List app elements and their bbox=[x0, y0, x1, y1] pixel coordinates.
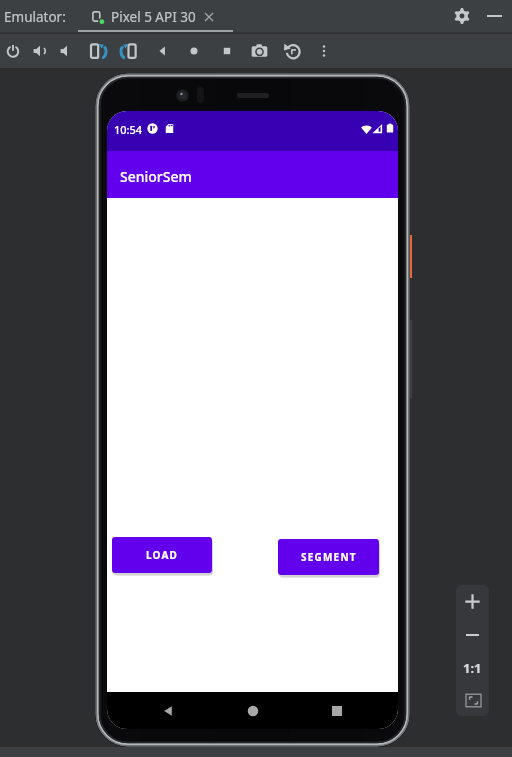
button[interactable]: Home bbox=[238, 696, 268, 726]
staticText: 1:1 bbox=[463, 659, 482, 677]
staticText: Emulator: bbox=[4, 8, 66, 26]
button[interactable]: Home bbox=[180, 34, 208, 68]
other: Close tab bbox=[204, 12, 214, 22]
button[interactable]: Screenshot bbox=[245, 34, 273, 68]
button[interactable]: Power bbox=[0, 34, 27, 68]
button[interactable]: Back bbox=[149, 34, 177, 68]
button[interactable]: Volume down bbox=[53, 34, 81, 68]
button[interactable]: Rotate left bbox=[84, 34, 112, 68]
staticText: SEGMENT bbox=[301, 550, 357, 564]
staticText: Pixel 5 API 30 bbox=[111, 8, 196, 26]
button[interactable]: Settings bbox=[450, 4, 474, 28]
staticText: SeniorSem bbox=[120, 167, 192, 186]
button[interactable]: Zoom in bbox=[456, 585, 489, 618]
button[interactable]: Volume up bbox=[26, 34, 54, 68]
button[interactable]: Zoom out bbox=[456, 618, 489, 651]
button[interactable]: Rotate right bbox=[114, 34, 142, 68]
button[interactable]: Recents bbox=[322, 696, 352, 726]
button[interactable]: SEGMENT bbox=[278, 539, 379, 575]
button[interactable]: Fit to screen bbox=[457, 684, 489, 716]
button[interactable]: 1:1 bbox=[456, 651, 489, 684]
button[interactable]: More bbox=[310, 34, 338, 68]
button[interactable]: Minimize bbox=[482, 4, 506, 28]
staticText: 10:54 bbox=[114, 122, 143, 137]
button[interactable]: Pixel 5 API 30 bbox=[92, 8, 214, 26]
button[interactable]: Overview bbox=[213, 34, 241, 68]
staticText: LOAD bbox=[146, 548, 179, 562]
button[interactable]: Record screen bbox=[278, 34, 306, 68]
button[interactable]: LOAD bbox=[112, 537, 212, 573]
button[interactable]: Back bbox=[153, 696, 183, 726]
